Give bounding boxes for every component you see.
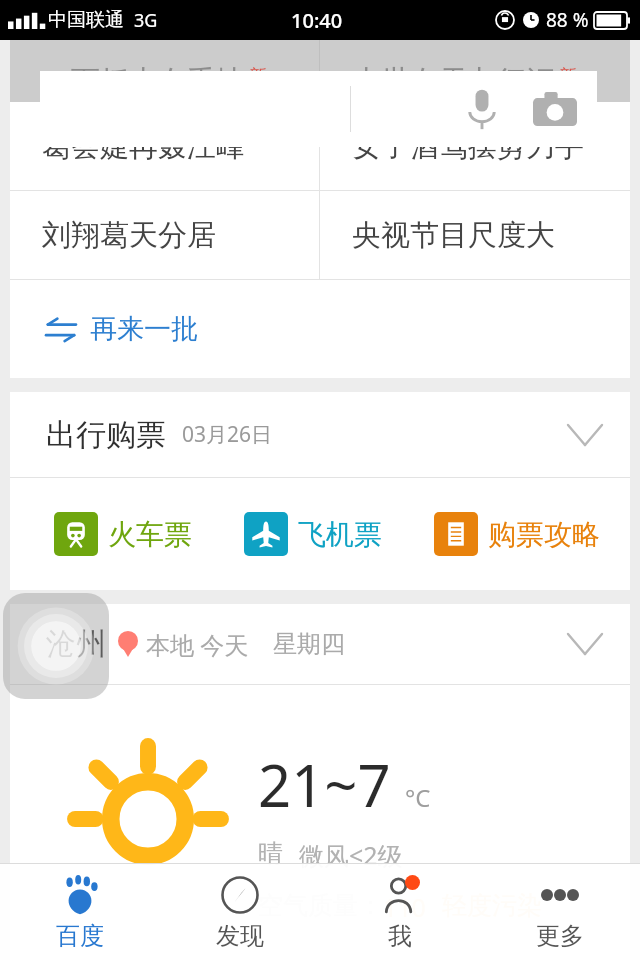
button[interactable]: 沧州 bbox=[10, 604, 630, 684]
staticText: 刘翔葛天分居 bbox=[42, 217, 216, 254]
button[interactable]: 发现 bbox=[160, 864, 320, 960]
staticText: 我 bbox=[388, 921, 412, 951]
button[interactable]: 更多 bbox=[480, 864, 640, 960]
staticText: 3G bbox=[134, 8, 158, 33]
staticText: 88 % bbox=[546, 7, 589, 33]
staticText: 03月26日 bbox=[182, 420, 273, 449]
staticText: 中国联通 bbox=[48, 8, 124, 32]
staticText: 女子酒驾摆剪刀手 bbox=[352, 128, 584, 165]
staticText: 110 bbox=[383, 890, 426, 924]
button[interactable]: 刘翔葛天分居 bbox=[10, 191, 319, 279]
staticText: 购票攻略 bbox=[488, 517, 600, 552]
staticText: 更多 bbox=[536, 921, 584, 951]
button[interactable]: 大世女天九征汇 bbox=[320, 40, 630, 102]
staticText: 10:40 bbox=[291, 7, 343, 34]
button[interactable]: 购票攻略 bbox=[434, 512, 600, 556]
staticText: °C bbox=[405, 781, 431, 814]
staticText: 星期四 bbox=[273, 629, 345, 659]
staticText: 轻度污染 bbox=[442, 890, 542, 921]
staticText: 央视节目尺度大 bbox=[352, 217, 555, 254]
button[interactable]: 再来一批 bbox=[10, 280, 630, 378]
staticText: 发现 bbox=[216, 921, 264, 951]
button[interactable]: 百度 bbox=[0, 864, 160, 960]
button[interactable]: Image search bbox=[526, 80, 584, 138]
staticText: 新 bbox=[559, 65, 577, 88]
button[interactable]: 出行购票 bbox=[10, 392, 630, 477]
staticText: 新 bbox=[249, 65, 267, 88]
staticText: 一百括大女手地 bbox=[42, 63, 245, 100]
staticText: 沧州 bbox=[46, 625, 106, 663]
staticText: 微风<2级 bbox=[299, 838, 403, 872]
staticText: 21~7 bbox=[258, 745, 391, 824]
staticText: 本地 今天 bbox=[146, 628, 249, 661]
button[interactable]: 女子酒驾摆剪刀手 bbox=[320, 102, 630, 190]
staticText: 火车票 bbox=[108, 517, 192, 552]
staticText: 出行购票 bbox=[46, 416, 166, 454]
button[interactable]: Voice search bbox=[453, 80, 511, 138]
button[interactable]: 我 bbox=[320, 864, 480, 960]
staticText: 葛荟婕再轰汪峰 bbox=[42, 128, 245, 165]
staticText: 空气质量： bbox=[258, 890, 383, 921]
button[interactable]: 飞机票 bbox=[244, 512, 382, 556]
button[interactable]: 一百括大女手地 bbox=[10, 40, 319, 102]
staticText: 再来一批 bbox=[90, 312, 198, 346]
staticText: 百度 bbox=[56, 921, 104, 951]
button[interactable]: 火车票 bbox=[54, 512, 192, 556]
staticText: 飞机票 bbox=[298, 517, 382, 552]
button[interactable]: 葛荟婕再轰汪峰 bbox=[10, 102, 319, 190]
button[interactable]: AssistiveTouch bbox=[3, 593, 109, 699]
staticText: 晴 bbox=[258, 838, 283, 869]
button[interactable]: 央视节目尺度大 bbox=[320, 191, 630, 279]
button[interactable]: Voice search bbox=[40, 71, 597, 147]
staticText: 大世女天九征汇 bbox=[352, 63, 555, 100]
